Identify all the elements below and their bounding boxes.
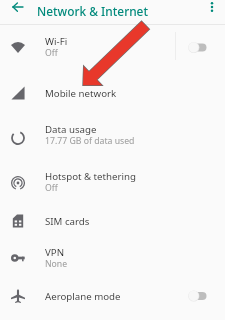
button[interactable]: Aeroplane mode	[0, 279, 225, 313]
staticText: VPN	[45, 246, 65, 259]
staticText: Off	[45, 182, 58, 194]
button[interactable]: Data usage	[0, 115, 225, 160]
staticText: Wi-Fi	[45, 35, 68, 48]
button[interactable]: Hotspot & tethering	[0, 160, 225, 205]
staticText: None	[45, 258, 68, 270]
staticText: Network & Internet	[37, 3, 148, 19]
button[interactable]: Back	[8, 0, 28, 17]
button[interactable]: SIM cards	[0, 205, 225, 237]
staticText: Data usage	[45, 123, 97, 136]
staticText: Off	[45, 47, 58, 59]
button[interactable]: Wi-Fi toggle	[180, 25, 225, 70]
staticText: Mobile network	[45, 87, 117, 100]
button[interactable]: Aeroplane mode toggle	[180, 279, 225, 313]
staticText: 17.77 GB of data used	[45, 135, 135, 147]
button[interactable]: Wi-Fi	[0, 25, 225, 70]
staticText: SIM cards	[45, 215, 90, 228]
button[interactable]: Mobile network	[0, 70, 225, 116]
button[interactable]: More options	[202, 0, 222, 17]
staticText: Aeroplane mode	[45, 290, 121, 303]
staticText: Hotspot & tethering	[45, 170, 136, 183]
button[interactable]: VPN	[0, 237, 225, 279]
